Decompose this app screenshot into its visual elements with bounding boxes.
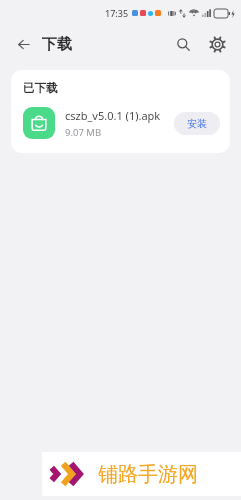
staticText: 铺路手游网: [98, 462, 198, 487]
staticText: 已下载: [23, 81, 58, 95]
staticText: cszb_v5.0.1 (1).apk: [65, 108, 161, 123]
staticText: 安装: [187, 117, 207, 130]
button[interactable]: Settings: [203, 30, 231, 58]
staticText: 下载: [42, 35, 72, 54]
staticText: 17:35: [105, 7, 129, 19]
button[interactable]: 安装: [174, 112, 220, 135]
button[interactable]: cszb_v5.0.1 (1).apk: [11, 105, 230, 141]
button[interactable]: Search: [169, 30, 197, 58]
button[interactable]: Back: [10, 31, 36, 57]
staticText: 9.07 MB: [65, 126, 102, 139]
